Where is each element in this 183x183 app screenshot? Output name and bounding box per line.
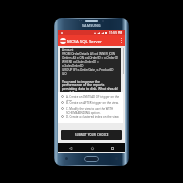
staticText: SUBMIT YOUR CHOICE <box>75 133 109 137</box>
button[interactable]: A. Create an INSTEAD OF trigger on the v… <box>58 95 123 101</box>
staticText: SAMSUNG <box>82 23 101 28</box>
staticText: 11:55 PM <box>109 31 123 35</box>
button[interactable]: Back <box>67 145 73 151</box>
button[interactable]: C. Modify the view to use the WITH SCHEM… <box>58 107 123 115</box>
button[interactable]: More options <box>120 35 123 46</box>
staticText: Amount <box>62 48 74 52</box>
staticText: B. Create an AFTER trigger on the view. <box>66 101 119 105</box>
button[interactable]: Home <box>89 145 95 151</box>
staticText: A. Create an INSTEAD OF trigger on the v… <box>66 95 121 101</box>
staticText: D. Create a clustered index on the view. <box>66 115 120 119</box>
staticText: MCSA SQL Server <box>67 38 102 44</box>
staticText: C. Modify the view to use the WITH SCHEM… <box>66 107 121 115</box>
staticText: GO <box>62 72 67 76</box>
staticText: GROUP BY o.OrderDate, o.ProductID <box>62 68 114 72</box>
button[interactable]: B. Create an AFTER trigger on the view. <box>58 101 123 107</box>
staticText: o.SalesOrderID <box>62 64 84 68</box>
staticText: WHERE od.SalesOrderID = <box>62 60 99 64</box>
button[interactable]: Recents <box>109 145 115 151</box>
staticText: FROM OrderDetails AS od INNER JOIN <box>62 52 116 56</box>
staticText: Orders AS o ON od.OrderID = o.OrderID <box>62 56 118 60</box>
button[interactable]: D. Create a clustered index on the view. <box>58 115 123 121</box>
button[interactable]: SUBMIT YOUR CHOICE <box>61 130 122 140</box>
staticText: You need to improve the performance of t… <box>62 79 119 92</box>
